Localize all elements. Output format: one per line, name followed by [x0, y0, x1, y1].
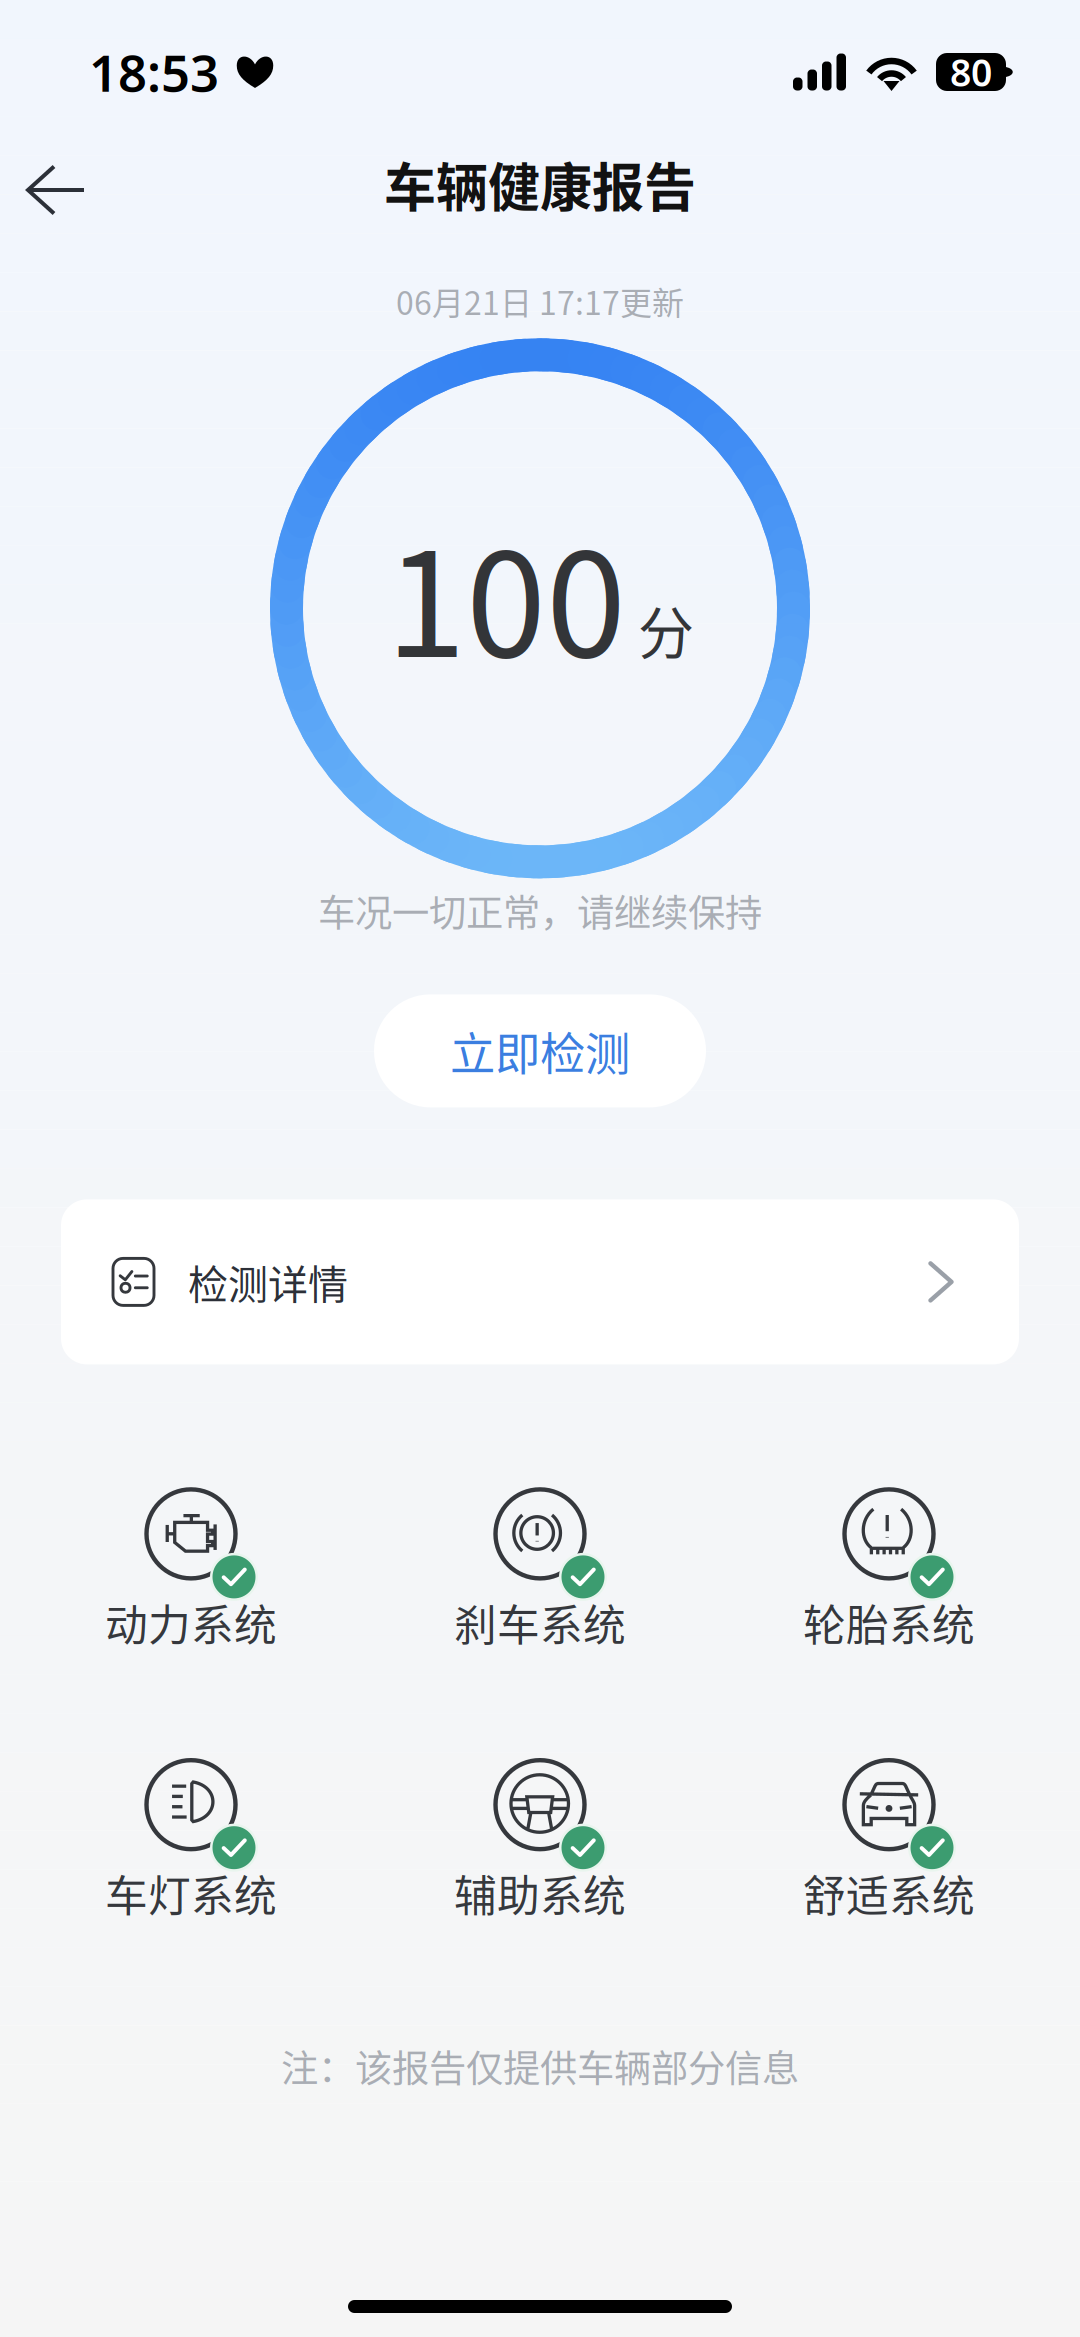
button[interactable]: 刹车系统 — [365, 1489, 714, 1653]
staticText: 18:53 — [89, 38, 219, 106]
staticText: 刹车系统 — [454, 1591, 626, 1653]
button[interactable]: Back — [0, 146, 114, 221]
staticText: 100 — [386, 490, 626, 699]
staticText: 辅助系统 — [454, 1862, 626, 1924]
staticText: 06月21日 17:17更新 — [396, 278, 684, 324]
button[interactable]: 轮胎系统 — [714, 1489, 1063, 1653]
button[interactable]: 检测详情 — [61, 1199, 1019, 1364]
button[interactable]: 舒适系统 — [714, 1760, 1063, 1924]
staticText: 检测详情 — [188, 1253, 348, 1311]
staticText: 车辆健康报告 — [384, 146, 696, 222]
button[interactable]: 辅助系统 — [365, 1760, 714, 1924]
staticText: 车灯系统 — [105, 1862, 277, 1924]
button[interactable]: 车灯系统 — [16, 1760, 365, 1924]
staticText: 轮胎系统 — [803, 1591, 975, 1653]
staticText: 80 — [950, 47, 992, 97]
staticText: 立即检测 — [450, 1018, 630, 1084]
staticText: 注：该报告仅提供车辆部分信息 — [281, 2039, 799, 2093]
button[interactable]: 立即检测 — [374, 994, 706, 1107]
staticText: 分 — [638, 588, 694, 670]
staticText: 动力系统 — [105, 1591, 277, 1653]
staticText: 车况一切正常，请继续保持 — [318, 883, 762, 937]
staticText: 舒适系统 — [803, 1862, 975, 1924]
button[interactable]: 动力系统 — [16, 1489, 365, 1653]
